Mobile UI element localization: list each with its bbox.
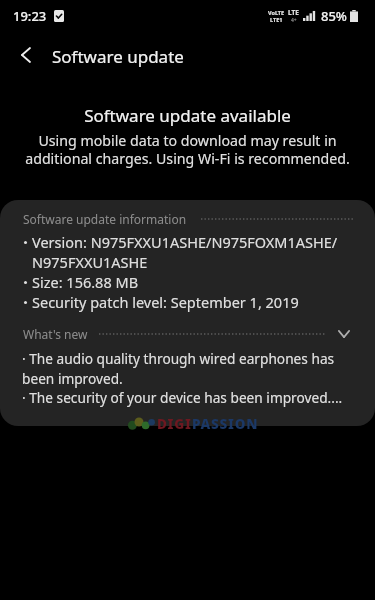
staticText: 4+ (291, 17, 297, 24)
staticText: Using mobile data to download may result… (18, 131, 357, 168)
staticText: LTE (288, 8, 299, 17)
staticText: VoLTE (268, 9, 285, 16)
staticText: Software update (52, 45, 184, 68)
staticText: Software update available (0, 104, 375, 127)
staticText: What's new (23, 326, 88, 342)
staticText: · The security of your device has been i… (22, 388, 344, 407)
button[interactable]: Back (4, 34, 48, 76)
button[interactable]: Expand What's new (331, 322, 357, 346)
staticText: Software update information (23, 211, 187, 227)
staticText: PASSION (192, 415, 259, 432)
staticText: LTE1 (270, 16, 283, 23)
staticText: Security patch level: September 1, 2019 (32, 292, 299, 312)
staticText: 85% (321, 7, 347, 25)
staticText: 19:23 (13, 7, 47, 25)
staticText: · The audio quality through wired earpho… (22, 349, 344, 388)
staticText: Version: N975FXXU1ASHE/N975FOXM1ASHE/N97… (32, 232, 360, 272)
staticText: Size: 156.88 MB (32, 272, 139, 292)
staticText: DIGI (157, 415, 192, 432)
